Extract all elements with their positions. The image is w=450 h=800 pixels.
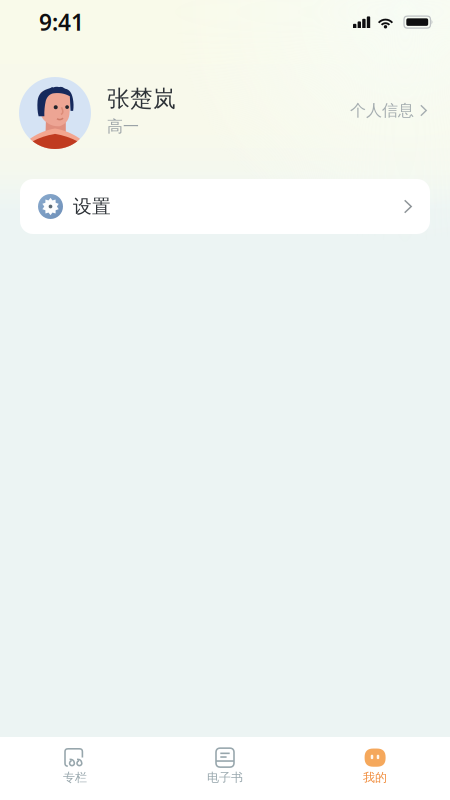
- staticText: 个人信息: [350, 101, 414, 120]
- button[interactable]: 设置: [20, 179, 430, 234]
- staticText: 张楚岚: [107, 85, 176, 113]
- staticText: 我的: [363, 770, 387, 785]
- button[interactable]: 我的: [300, 737, 450, 800]
- staticText: 电子书: [207, 770, 243, 785]
- staticText: 9:41: [39, 7, 84, 37]
- staticText: 高一: [107, 117, 139, 136]
- button[interactable]: 个人信息: [347, 92, 430, 129]
- staticText: 设置: [73, 195, 111, 218]
- button[interactable]: 专栏: [0, 737, 150, 800]
- button[interactable]: 电子书: [150, 737, 300, 800]
- staticText: 专栏: [63, 770, 87, 785]
